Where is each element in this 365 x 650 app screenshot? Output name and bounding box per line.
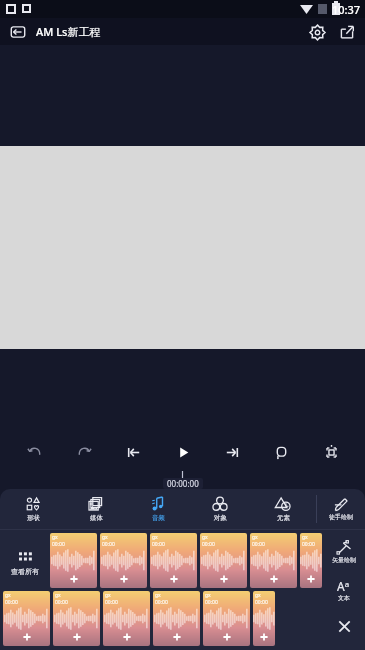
staticText: 10:37 bbox=[332, 2, 361, 17]
button[interactable]: Audio clip bbox=[50, 533, 97, 588]
staticText: 00:00 bbox=[102, 541, 115, 548]
staticText: Aᵃ bbox=[337, 578, 350, 594]
button[interactable]: Back bbox=[6, 20, 30, 44]
button[interactable]: Audio clip bbox=[200, 533, 247, 588]
button[interactable]: Settings bbox=[305, 20, 329, 44]
staticText: gx bbox=[302, 534, 308, 541]
staticText: 00:00 bbox=[255, 599, 268, 606]
staticText: gx bbox=[5, 592, 11, 599]
button[interactable]: Play bbox=[168, 437, 198, 467]
button[interactable]: 元素 bbox=[254, 493, 312, 525]
staticText: gx bbox=[152, 534, 158, 541]
button[interactable]: Audio clip bbox=[300, 533, 322, 588]
button[interactable]: Audio clip bbox=[203, 591, 250, 646]
button[interactable]: 徒手绘制 bbox=[317, 489, 365, 529]
staticText: AM Ls新工程 bbox=[36, 24, 101, 39]
staticText: 对象 bbox=[214, 514, 227, 522]
staticText: 文本 bbox=[338, 594, 350, 602]
button[interactable]: 形状 bbox=[4, 493, 62, 525]
staticText: 00:00:00 bbox=[167, 478, 199, 489]
button[interactable]: Redo bbox=[69, 437, 99, 467]
staticText: 00:00 bbox=[105, 599, 118, 606]
staticText: 00:00 bbox=[152, 541, 165, 548]
button[interactable]: Skip to end bbox=[217, 437, 247, 467]
staticText: 00:00 bbox=[252, 541, 265, 548]
button[interactable]: Audio clip bbox=[103, 591, 150, 646]
button[interactable]: Audio clip bbox=[3, 591, 50, 646]
button[interactable]: 音频 bbox=[129, 493, 187, 525]
staticText: gx bbox=[105, 592, 111, 599]
button[interactable]: 对象 bbox=[191, 493, 249, 525]
button[interactable]: 媒体 bbox=[67, 493, 125, 525]
button[interactable]: Audio clip bbox=[100, 533, 147, 588]
staticText: gx bbox=[205, 592, 211, 599]
staticText: 元素 bbox=[277, 514, 290, 522]
button[interactable]: Close bbox=[332, 614, 356, 638]
staticText: gx bbox=[255, 592, 261, 599]
staticText: 查看所有 bbox=[11, 567, 39, 576]
staticText: 00:00 bbox=[205, 599, 218, 606]
staticText: 00:00 bbox=[155, 599, 168, 606]
staticText: 徒手绘制 bbox=[329, 513, 353, 521]
staticText: gx bbox=[252, 534, 258, 541]
button[interactable]: 矢量绘制 bbox=[330, 538, 358, 566]
staticText: 00:00 bbox=[52, 541, 65, 548]
staticText: 00:00 bbox=[202, 541, 215, 548]
staticText: 矢量绘制 bbox=[332, 556, 356, 564]
button[interactable]: Aᵃ bbox=[335, 576, 352, 604]
button[interactable]: Audio clip bbox=[153, 591, 200, 646]
staticText: 00:00 bbox=[302, 541, 315, 548]
button[interactable]: Audio clip bbox=[150, 533, 197, 588]
button[interactable]: 查看所有 bbox=[0, 530, 50, 650]
staticText: gx bbox=[55, 592, 61, 599]
staticText: gx bbox=[102, 534, 108, 541]
button[interactable]: Export bbox=[335, 20, 359, 44]
staticText: 媒体 bbox=[90, 514, 103, 522]
staticText: 00:00 bbox=[5, 599, 18, 606]
staticText: gx bbox=[155, 592, 161, 599]
button[interactable]: Loop bbox=[266, 437, 296, 467]
staticText: 形状 bbox=[27, 514, 40, 522]
button[interactable]: Audio clip bbox=[53, 591, 100, 646]
staticText: 00:00 bbox=[55, 599, 68, 606]
button[interactable]: Audio clip bbox=[250, 533, 297, 588]
button[interactable]: Audio clip bbox=[253, 591, 275, 646]
button[interactable]: Undo bbox=[19, 437, 49, 467]
staticText: 音频 bbox=[152, 514, 165, 522]
button[interactable]: Skip to start bbox=[118, 437, 148, 467]
button[interactable]: Fit to screen bbox=[316, 437, 346, 467]
staticText: gx bbox=[52, 534, 58, 541]
staticText: gx bbox=[202, 534, 208, 541]
